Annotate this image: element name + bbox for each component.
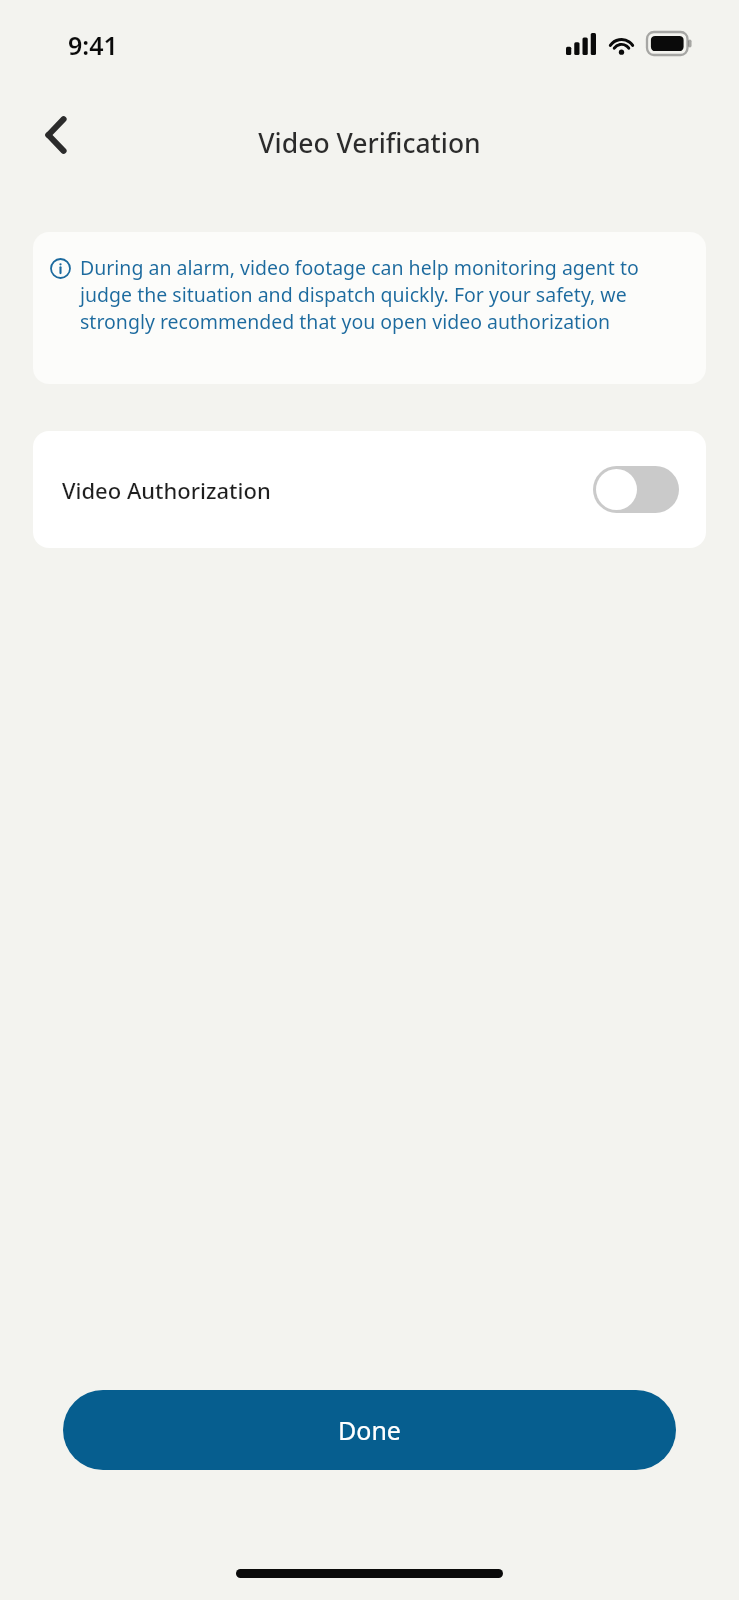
- button[interactable]: Video Authorization: [33, 431, 706, 548]
- button[interactable]: Done: [63, 1390, 676, 1470]
- staticText: Video Authorization: [62, 475, 593, 505]
- button[interactable]: Back: [24, 103, 88, 167]
- staticText: During an alarm, video footage can help …: [80, 254, 688, 335]
- staticText: Done: [338, 1413, 401, 1447]
- button[interactable]: Video Authorization toggle, off: [593, 466, 679, 513]
- staticText: 9:41: [68, 28, 118, 62]
- staticText: Video Verification: [258, 125, 481, 161]
